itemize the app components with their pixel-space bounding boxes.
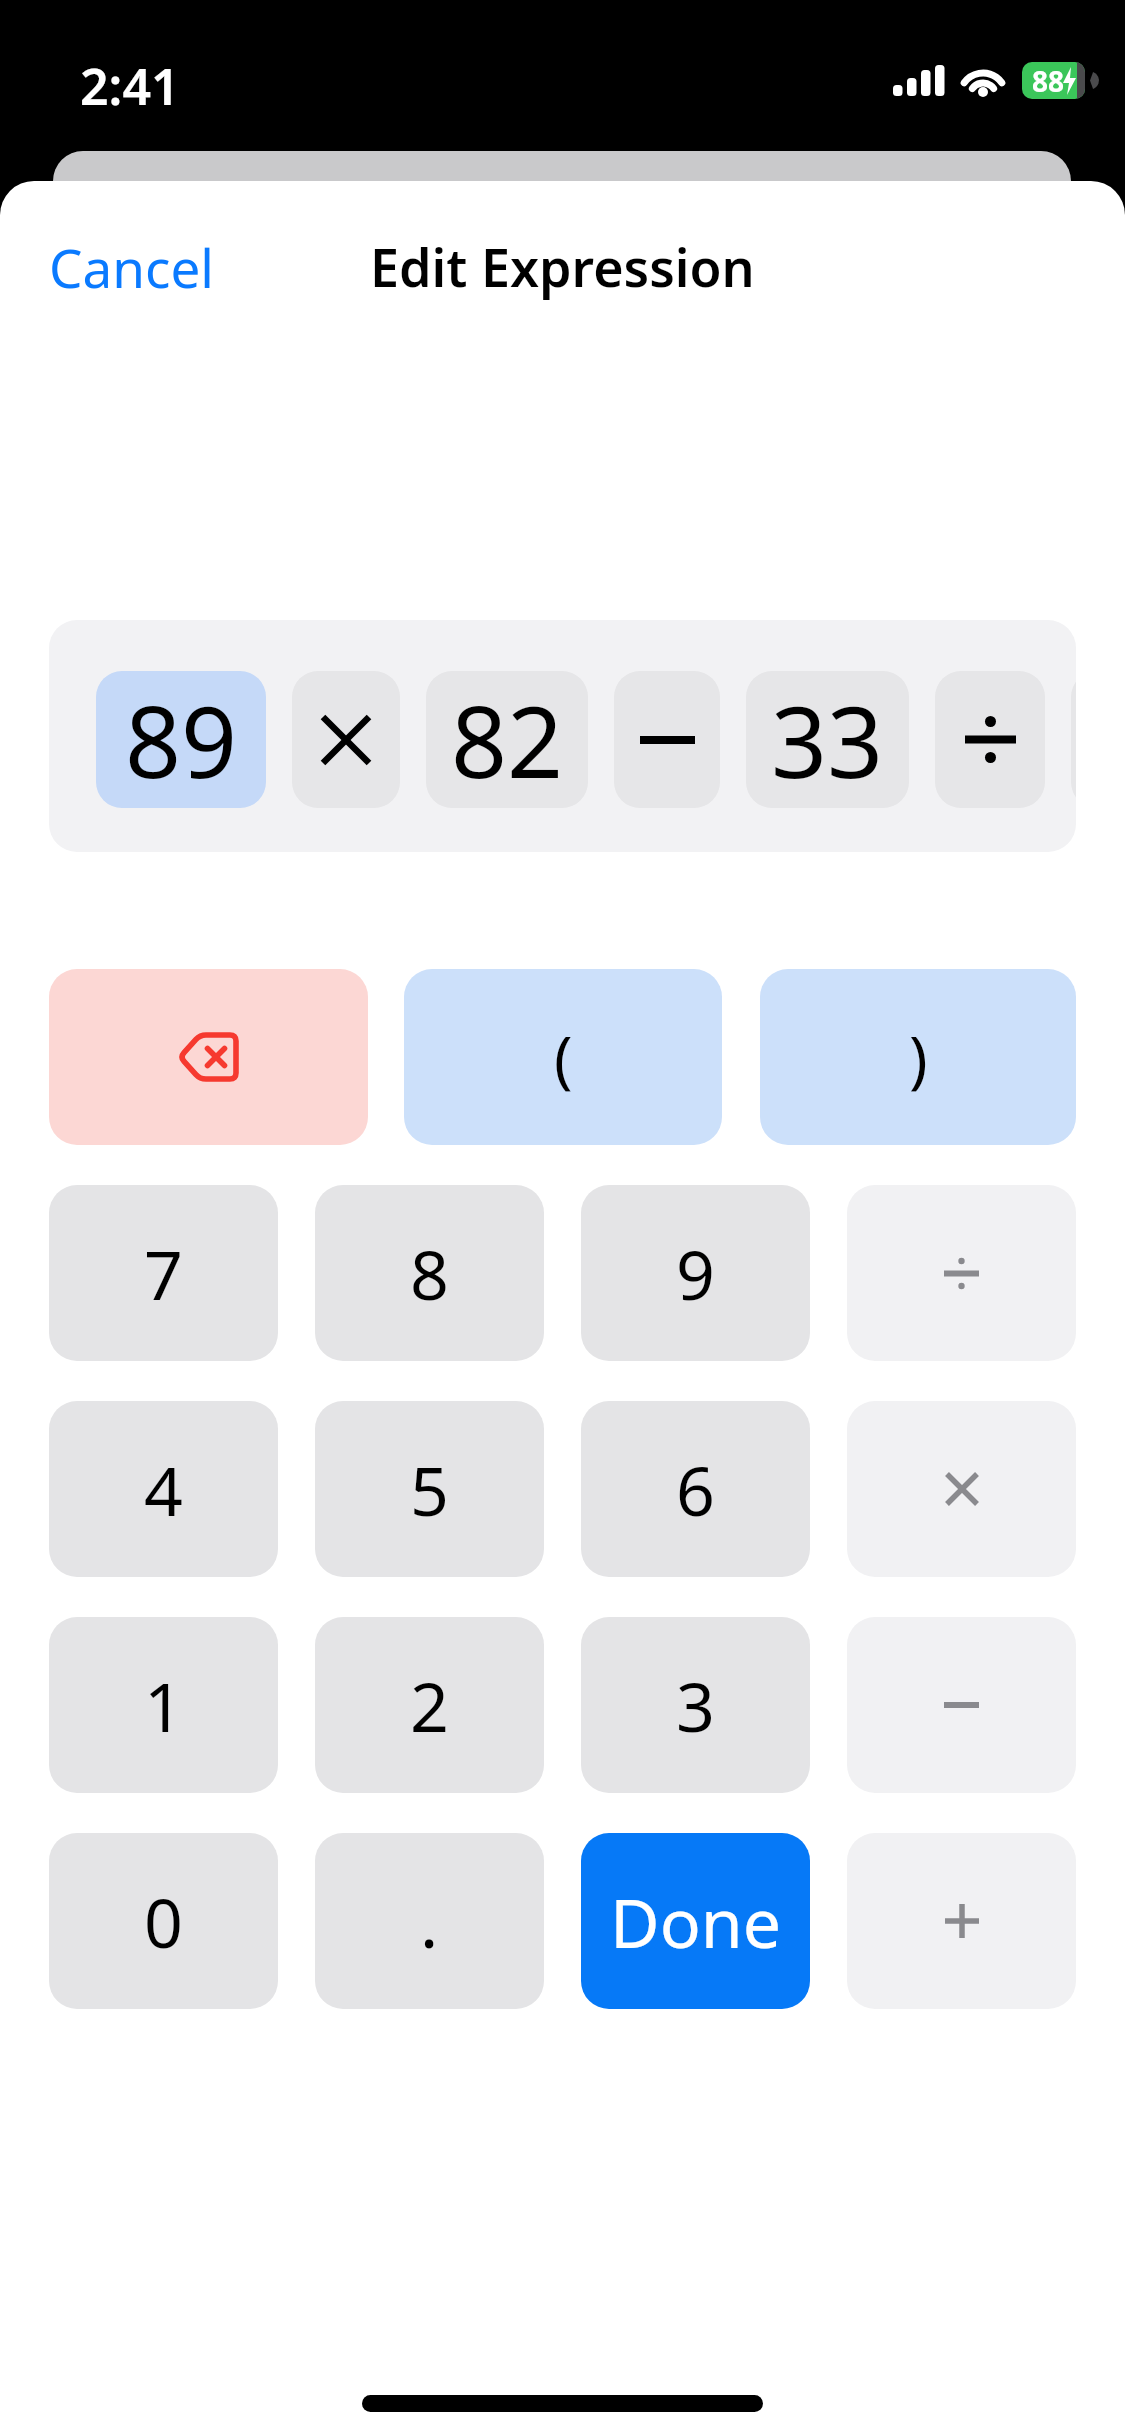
- button[interactable]: 3: [581, 1617, 810, 1793]
- button[interactable]: 5: [315, 1401, 544, 1577]
- button[interactable]: [614, 671, 720, 808]
- staticText: 1: [144, 1659, 183, 1752]
- staticText: 82: [451, 673, 564, 806]
- staticText: Done: [610, 1875, 782, 1968]
- staticText: Edit Expression: [370, 231, 755, 301]
- button[interactable]: [1071, 671, 1076, 808]
- staticText: Cancel: [49, 231, 214, 301]
- button[interactable]: [847, 1617, 1076, 1793]
- button[interactable]: 8: [315, 1185, 544, 1361]
- button[interactable]: Done: [581, 1833, 810, 2009]
- button[interactable]: [49, 969, 368, 1145]
- button[interactable]: 6: [581, 1401, 810, 1577]
- staticText: 5: [410, 1443, 449, 1536]
- button[interactable]: 89: [96, 671, 266, 808]
- staticText: 6: [676, 1443, 715, 1536]
- staticText: 0: [144, 1875, 183, 1968]
- button[interactable]: 1: [49, 1617, 278, 1793]
- staticText: 8: [410, 1227, 449, 1320]
- button[interactable]: ): [760, 969, 1076, 1145]
- staticText: .: [420, 1875, 439, 1968]
- staticText: 9: [676, 1227, 715, 1320]
- staticText: (: [554, 1015, 573, 1099]
- staticText: 33: [771, 673, 884, 806]
- staticText: 89: [125, 673, 238, 806]
- button[interactable]: 82: [426, 671, 588, 808]
- button[interactable]: [847, 1185, 1076, 1361]
- button[interactable]: (: [404, 969, 722, 1145]
- staticText: 2: [410, 1659, 449, 1752]
- button[interactable]: 33: [746, 671, 909, 808]
- staticText: 7: [144, 1227, 183, 1320]
- button[interactable]: 9: [581, 1185, 810, 1361]
- button[interactable]: 2: [315, 1617, 544, 1793]
- staticText: 2:41: [80, 52, 180, 108]
- button[interactable]: [847, 1401, 1076, 1577]
- button[interactable]: 4: [49, 1401, 278, 1577]
- button[interactable]: 7: [49, 1185, 278, 1361]
- button[interactable]: [292, 671, 400, 808]
- button[interactable]: .: [315, 1833, 544, 2009]
- staticText: 4: [144, 1443, 183, 1536]
- staticText: 3: [676, 1659, 715, 1752]
- button[interactable]: 0: [49, 1833, 278, 2009]
- button[interactable]: [935, 671, 1045, 808]
- button[interactable]: [847, 1833, 1076, 2009]
- staticText: 88: [1032, 62, 1065, 100]
- staticText: ): [909, 1015, 928, 1099]
- button[interactable]: Cancel: [49, 231, 309, 301]
